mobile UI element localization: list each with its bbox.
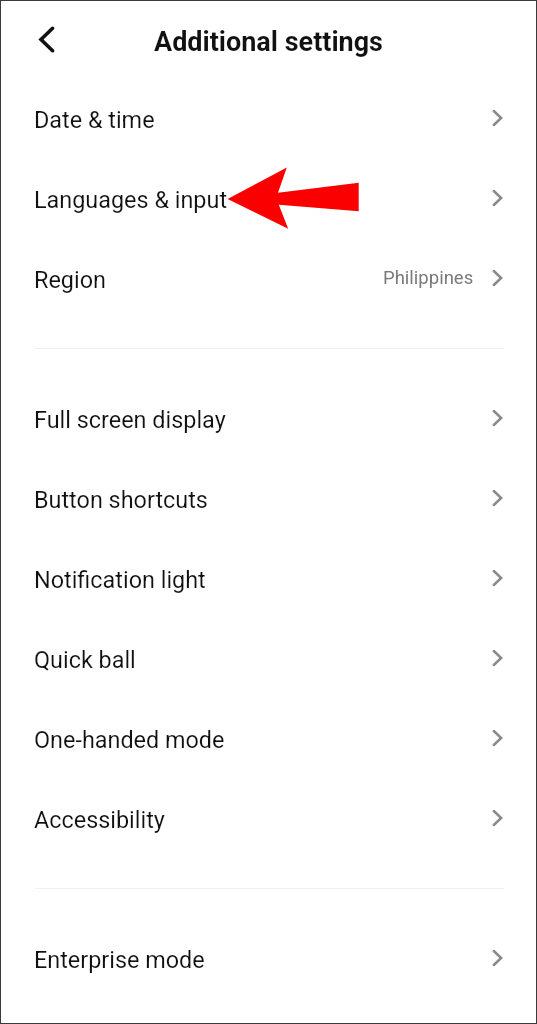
staticText: One-handed mode <box>34 726 225 753</box>
staticText: Accessibility <box>34 806 165 833</box>
button[interactable]: Languages & input <box>1 159 536 239</box>
button[interactable]: Back <box>19 12 75 68</box>
button[interactable]: Notification light <box>1 539 536 619</box>
button[interactable]: Enterprise mode <box>1 919 536 999</box>
button[interactable]: Accessibility <box>1 779 536 859</box>
button[interactable]: Quick ball <box>1 619 536 699</box>
staticText: Additional settings <box>154 26 383 58</box>
staticText: Philippines <box>383 267 474 289</box>
staticText: Quick ball <box>34 646 136 673</box>
button[interactable]: Date & time <box>1 79 536 159</box>
button[interactable]: Full screen display <box>1 379 536 459</box>
staticText: Button shortcuts <box>34 486 208 513</box>
staticText: Languages & input <box>34 186 228 213</box>
button[interactable]: Region <box>1 239 536 319</box>
staticText: Notification light <box>34 566 206 593</box>
staticText: Date & time <box>34 106 155 133</box>
staticText: Region <box>34 266 106 293</box>
staticText: Full screen display <box>34 406 226 433</box>
staticText: Enterprise mode <box>34 946 205 973</box>
button[interactable]: Button shortcuts <box>1 459 536 539</box>
button[interactable]: One-handed mode <box>1 699 536 779</box>
